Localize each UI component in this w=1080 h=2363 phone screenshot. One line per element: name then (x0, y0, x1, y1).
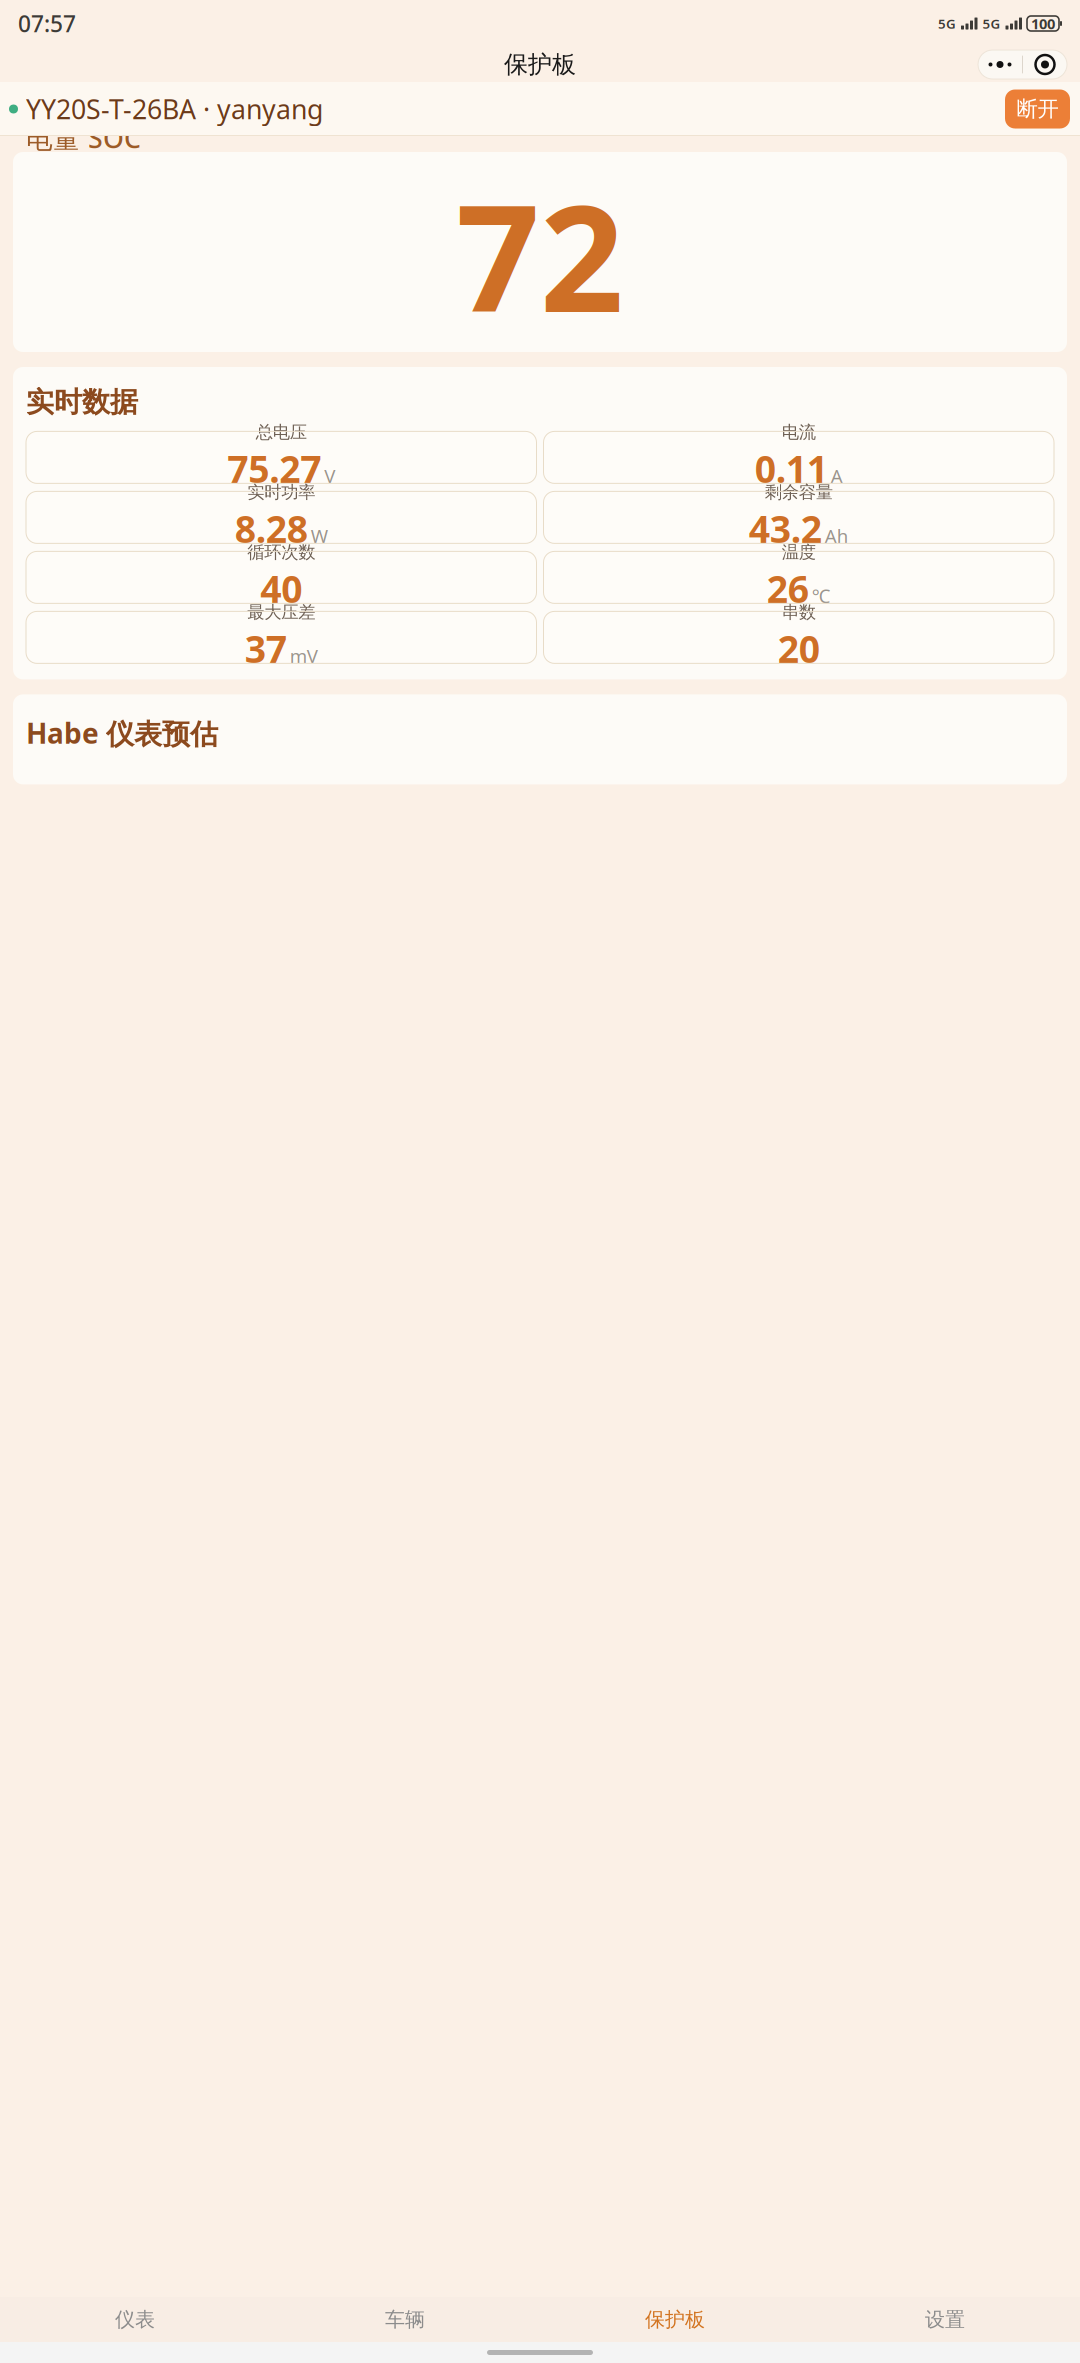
staticText: 车辆 (385, 2307, 425, 2332)
staticText: 仪表 (115, 2307, 155, 2332)
staticText: W (311, 523, 328, 548)
staticText: 电量 SOC (26, 120, 141, 156)
staticText: 断开 (1016, 96, 1058, 122)
button[interactable]: More options (978, 50, 1067, 79)
staticText: 电流 (782, 421, 816, 443)
staticText: 实时数据 (26, 385, 138, 419)
staticText: A (831, 463, 843, 488)
staticText: ℃ (812, 583, 831, 608)
staticText: 26 (767, 564, 809, 613)
staticText: Ah (825, 523, 849, 548)
staticText: 最大压差 (247, 601, 315, 623)
staticText: 循环次数 (247, 541, 315, 563)
staticText: 100 (1031, 14, 1055, 33)
staticText: 总电压 (256, 421, 307, 443)
button[interactable]: 仪表 (0, 2297, 270, 2342)
staticText: V (324, 463, 335, 488)
button[interactable]: 保护板 (540, 2297, 810, 2342)
staticText: 72 (456, 158, 624, 352)
staticText: 75.27 (227, 444, 321, 493)
staticText: 温度 (782, 541, 816, 563)
staticText: 37 (245, 624, 287, 673)
staticText: 40 (260, 564, 302, 613)
staticText: 5G (938, 15, 956, 32)
button[interactable]: 设置 (810, 2297, 1080, 2342)
staticText: 设置 (925, 2307, 965, 2332)
staticText: 串数 (782, 601, 816, 623)
button[interactable]: 断开 (1005, 89, 1070, 128)
staticText: mV (290, 643, 318, 668)
staticText: 5G (982, 15, 1000, 32)
staticText: 07:57 (18, 8, 76, 38)
staticText: 剩余容量 (765, 481, 833, 503)
staticText: 20 (778, 624, 820, 673)
staticText: 8.28 (235, 504, 308, 553)
staticText: 0.11 (755, 444, 828, 493)
staticText: 实时功率 (247, 481, 315, 503)
staticText: 保护板 (504, 50, 576, 79)
staticText: 43.2 (749, 504, 822, 553)
staticText: 保护板 (645, 2307, 705, 2332)
staticText: YY20S-T-26BA · yanyang (26, 91, 323, 127)
staticText: % (987, 360, 1009, 396)
button[interactable]: 车辆 (270, 2297, 540, 2342)
staticText: Habe 仪表预估 (26, 714, 218, 752)
